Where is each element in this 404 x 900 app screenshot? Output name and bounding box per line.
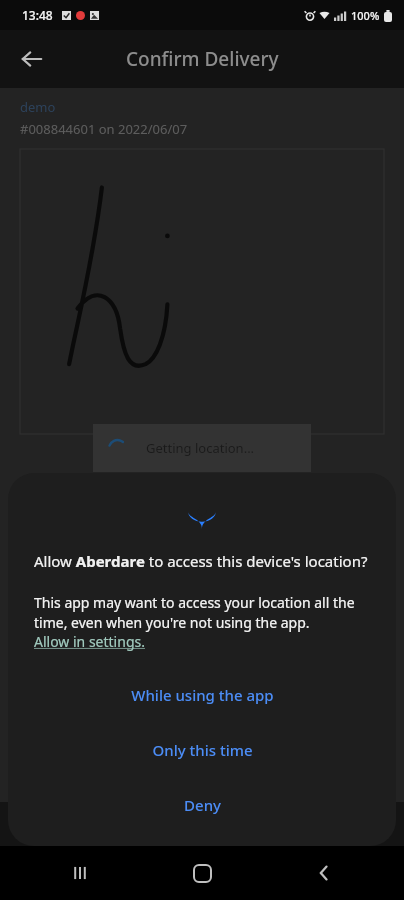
staticText: demo <box>20 98 56 116</box>
staticText: Getting location... <box>146 439 255 457</box>
staticText: Deny <box>184 795 221 815</box>
staticText: 100% <box>351 8 380 23</box>
staticText: Allow Aberdare to access this device's l… <box>34 551 368 571</box>
button[interactable]: Allow in settings. <box>34 632 145 651</box>
staticText: Only this time <box>152 740 253 760</box>
button[interactable]: Back <box>304 853 344 893</box>
staticText: 13:48 <box>22 7 53 23</box>
staticText: While using the app <box>131 685 274 705</box>
button[interactable]: Back <box>10 37 54 81</box>
button[interactable]: While using the app <box>8 667 396 722</box>
button[interactable]: Delivery <box>134 802 269 846</box>
staticText: This app may want to access your locatio… <box>34 593 370 632</box>
staticText: Confirm Delivery <box>126 46 279 72</box>
button[interactable]: Recents <box>60 853 100 893</box>
button[interactable]: Home <box>182 853 222 893</box>
staticText: #008844601 on 2022/06/07 <box>20 120 188 138</box>
button[interactable]: Deny <box>8 777 396 832</box>
button[interactable]: Only this time <box>8 722 396 777</box>
